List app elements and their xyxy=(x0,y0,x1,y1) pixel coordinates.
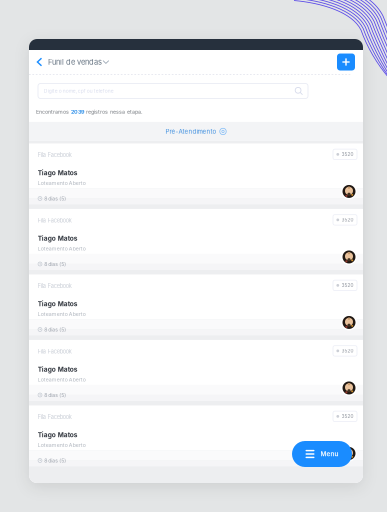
button[interactable]: Fila Facebook xyxy=(29,274,363,335)
staticText: Loteamento Aberto xyxy=(38,376,86,383)
staticText: 3520 xyxy=(342,217,354,223)
button[interactable]: Pré-Atendimento xyxy=(29,122,363,141)
staticText: Tiago Matos xyxy=(38,365,78,373)
button[interactable]: Funil de vendas xyxy=(29,50,115,74)
staticText: Tiago Matos xyxy=(38,169,78,177)
staticText: Funil de vendas xyxy=(48,57,102,66)
staticText: 2039 xyxy=(71,108,84,115)
button[interactable]: Adicionar xyxy=(337,53,355,70)
staticText: Pré-Atendimento xyxy=(165,128,216,135)
button[interactable]: Fila Facebook xyxy=(29,143,363,204)
staticText: Tiago Matos xyxy=(38,431,78,439)
staticText: 3520 xyxy=(342,283,354,288)
staticText: Digite o nome, cpf ou telefone xyxy=(44,88,114,94)
staticText: Loteamento Aberto xyxy=(38,180,86,186)
staticText: Fila Facebook xyxy=(38,152,72,158)
staticText: 8 dias (5) xyxy=(44,392,66,398)
staticText: 8 dias (5) xyxy=(44,261,66,267)
staticText: 3520 xyxy=(342,414,354,419)
staticText: Fila Facebook xyxy=(38,414,72,420)
staticText: 3520 xyxy=(342,152,354,157)
staticText: 8 dias (5) xyxy=(44,326,66,333)
button[interactable]: Fila Facebook xyxy=(29,340,363,401)
staticText: 3520 xyxy=(342,348,354,354)
staticText: Tiago Matos xyxy=(38,300,78,308)
staticText: Loteamento Aberto xyxy=(38,311,86,317)
staticText: 8 dias (5) xyxy=(44,457,66,464)
staticText: Tiago Matos xyxy=(38,234,78,242)
staticText: Fila Facebook xyxy=(38,348,72,355)
staticText: Loteamento Aberto xyxy=(38,442,86,448)
staticText: Loteamento Aberto xyxy=(38,245,86,252)
button[interactable]: Fila Facebook xyxy=(29,405,363,466)
button[interactable]: Fila Facebook xyxy=(29,209,363,270)
staticText: registros nessa etapa. xyxy=(84,108,143,115)
staticText: Fila Facebook xyxy=(38,283,72,289)
staticText: Encontramos xyxy=(36,108,71,115)
staticText: 8 dias (5) xyxy=(44,195,66,202)
button[interactable]: Menu xyxy=(292,441,352,467)
staticText: Fila Facebook xyxy=(38,217,72,224)
staticText: Menu xyxy=(320,450,338,458)
